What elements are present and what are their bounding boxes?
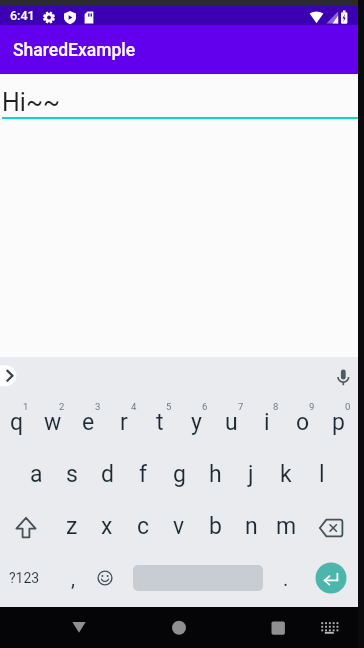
button[interactable]: r bbox=[106, 396, 142, 448]
button[interactable]: z bbox=[54, 500, 90, 552]
staticText: 5 bbox=[166, 401, 172, 412]
button[interactable]: w bbox=[35, 396, 71, 448]
button[interactable]: a bbox=[18, 448, 54, 500]
button[interactable]: h bbox=[197, 448, 233, 500]
staticText: 6:41 bbox=[10, 8, 35, 23]
button[interactable]: l bbox=[304, 448, 340, 500]
button[interactable]: Hi~~ bbox=[2, 81, 222, 123]
staticText: v bbox=[173, 513, 185, 540]
button[interactable]: n bbox=[233, 500, 269, 552]
button[interactable]: u bbox=[213, 396, 249, 448]
button[interactable]: t bbox=[142, 396, 178, 448]
button[interactable] bbox=[87, 552, 123, 604]
button[interactable]: , bbox=[55, 552, 91, 604]
staticText: ?123 bbox=[9, 570, 40, 586]
staticText: 4 bbox=[131, 401, 137, 412]
staticText: m bbox=[276, 513, 297, 540]
staticText: l bbox=[319, 461, 325, 488]
button[interactable]: . bbox=[268, 552, 304, 604]
staticText: u bbox=[225, 409, 238, 436]
button[interactable] bbox=[254, 609, 296, 647]
button[interactable]: q bbox=[0, 396, 35, 448]
staticText: r bbox=[120, 409, 128, 436]
staticText: y bbox=[191, 409, 202, 436]
staticText: d bbox=[101, 461, 114, 488]
button[interactable]: s bbox=[54, 448, 90, 500]
staticText: 7 bbox=[238, 401, 244, 412]
button[interactable]: i bbox=[249, 396, 285, 448]
staticText: 3 bbox=[95, 401, 101, 412]
staticText: k bbox=[280, 461, 292, 488]
staticText: x bbox=[101, 513, 113, 540]
button[interactable]: m bbox=[268, 500, 304, 552]
staticText: q bbox=[10, 409, 24, 436]
button[interactable] bbox=[312, 609, 348, 647]
staticText: 6 bbox=[202, 401, 208, 412]
button[interactable]: f bbox=[125, 448, 161, 500]
staticText: w bbox=[44, 409, 62, 436]
button[interactable] bbox=[4, 502, 40, 554]
button[interactable]: y bbox=[178, 396, 214, 448]
staticText: SharedExample bbox=[13, 40, 136, 61]
button[interactable]: k bbox=[268, 448, 304, 500]
button[interactable]: x bbox=[89, 500, 125, 552]
button[interactable]: ?123 bbox=[4, 552, 44, 604]
staticText: . bbox=[283, 567, 289, 590]
button[interactable]: b bbox=[197, 500, 233, 552]
button[interactable]: e bbox=[70, 396, 106, 448]
staticText: a bbox=[30, 461, 43, 488]
button[interactable] bbox=[158, 609, 200, 647]
staticText: n bbox=[245, 513, 258, 540]
staticText: e bbox=[82, 409, 95, 436]
staticText: 8 bbox=[273, 401, 279, 412]
button[interactable]: c bbox=[125, 500, 161, 552]
button[interactable] bbox=[58, 609, 100, 647]
staticText: i bbox=[264, 409, 270, 436]
staticText: f bbox=[139, 461, 147, 488]
button[interactable] bbox=[310, 502, 346, 554]
staticText: Hi~~ bbox=[2, 88, 60, 117]
staticText: , bbox=[71, 567, 75, 590]
staticText: j bbox=[248, 461, 254, 488]
staticText: s bbox=[66, 461, 78, 488]
staticText: t bbox=[156, 409, 164, 436]
button[interactable]: j bbox=[233, 448, 269, 500]
staticText: h bbox=[209, 461, 222, 488]
button[interactable]: p bbox=[320, 396, 356, 448]
button[interactable]: d bbox=[89, 448, 125, 500]
staticText: z bbox=[66, 513, 78, 540]
button[interactable] bbox=[326, 358, 358, 394]
staticText: b bbox=[209, 513, 222, 540]
staticText: g bbox=[173, 461, 186, 488]
staticText: c bbox=[137, 513, 150, 540]
button[interactable]: v bbox=[161, 500, 197, 552]
staticText: p bbox=[332, 409, 345, 436]
staticText: 2 bbox=[59, 401, 65, 412]
staticText: 9 bbox=[309, 401, 315, 412]
button[interactable]: g bbox=[161, 448, 197, 500]
button[interactable] bbox=[315, 562, 347, 594]
staticText: 0 bbox=[345, 401, 351, 412]
button[interactable]: o bbox=[285, 396, 321, 448]
staticText: 1 bbox=[23, 401, 29, 412]
button[interactable] bbox=[0, 357, 30, 397]
staticText: o bbox=[296, 409, 310, 436]
